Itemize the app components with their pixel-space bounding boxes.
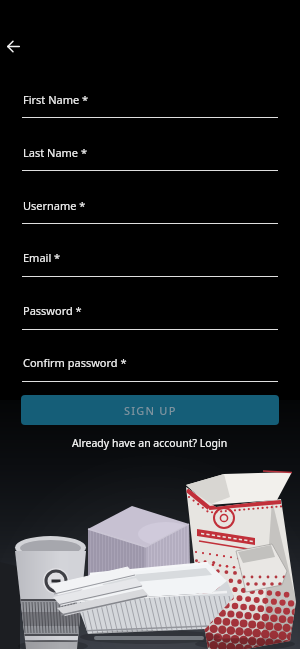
- staticText: Confirm password *: [23, 355, 127, 370]
- button[interactable]: First Name *: [22, 88, 278, 120]
- button[interactable]: Password *: [22, 299, 278, 331]
- staticText: SIGN UP: [124, 403, 177, 418]
- staticText: Email *: [23, 250, 61, 265]
- button[interactable]: Email *: [22, 246, 278, 278]
- button[interactable]: SIGN UP: [21, 395, 279, 425]
- staticText: Password *: [23, 303, 82, 318]
- button[interactable]: Confirm password *: [22, 351, 278, 383]
- staticText: Already have an account? Login: [72, 436, 228, 450]
- button[interactable]: Last Name *: [22, 141, 278, 173]
- staticText: First Name *: [23, 92, 89, 107]
- button[interactable]: Username *: [22, 194, 278, 226]
- staticText: Last Name *: [23, 145, 87, 160]
- staticText: Username *: [23, 198, 86, 213]
- button[interactable]: Already have an account? Login: [0, 434, 300, 452]
- button[interactable]: [0, 34, 40, 62]
